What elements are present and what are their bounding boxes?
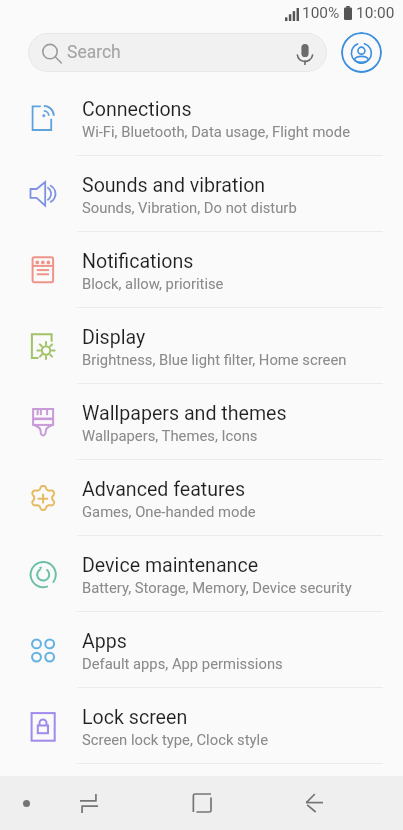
- button[interactable]: Recent apps: [33, 776, 145, 830]
- staticText: Brightness, Blue light filter, Home scre…: [82, 351, 347, 368]
- button[interactable]: Back: [258, 776, 371, 830]
- staticText: 10:00: [356, 4, 395, 22]
- staticText: Wi-Fi, Bluetooth, Data usage, Flight mod…: [82, 123, 350, 140]
- staticText: Default apps, App permissions: [82, 655, 283, 672]
- staticText: Wallpapers and themes: [82, 402, 287, 425]
- button[interactable]: Voice search: [293, 41, 317, 65]
- button[interactable]: Device maintenance: [0, 536, 403, 612]
- staticText: Lock screen: [82, 706, 188, 729]
- button[interactable]: Apps: [0, 612, 403, 688]
- button[interactable]: Search: [28, 33, 327, 72]
- button[interactable]: Display: [0, 308, 403, 384]
- button[interactable]: Advanced features: [0, 460, 403, 536]
- staticText: Games, One-handed mode: [82, 503, 256, 520]
- button[interactable]: Sounds and vibration: [0, 156, 403, 232]
- button[interactable]: Wallpapers and themes: [0, 384, 403, 460]
- staticText: Wallpapers, Themes, Icons: [82, 427, 258, 444]
- button[interactable]: Notifications: [0, 232, 403, 308]
- staticText: Advanced features: [82, 478, 246, 501]
- staticText: Sounds, Vibration, Do not disturb: [82, 199, 297, 216]
- button[interactable]: Connections: [0, 80, 403, 156]
- staticText: Block, allow, prioritise: [82, 275, 224, 292]
- staticText: Display: [82, 326, 146, 349]
- button[interactable]: Lock screen: [0, 688, 403, 764]
- staticText: Apps: [82, 630, 127, 653]
- staticText: Battery, Storage, Memory, Device securit…: [82, 579, 352, 596]
- staticText: Search: [67, 42, 121, 63]
- staticText: Device maintenance: [82, 554, 259, 577]
- staticText: Screen lock type, Clock style: [82, 731, 268, 748]
- staticText: Notifications: [82, 250, 194, 273]
- button[interactable]: Home: [145, 776, 258, 830]
- button[interactable]: Account: [341, 32, 382, 73]
- staticText: Connections: [82, 98, 192, 121]
- staticText: 100%: [302, 4, 340, 22]
- staticText: Sounds and vibration: [82, 174, 266, 197]
